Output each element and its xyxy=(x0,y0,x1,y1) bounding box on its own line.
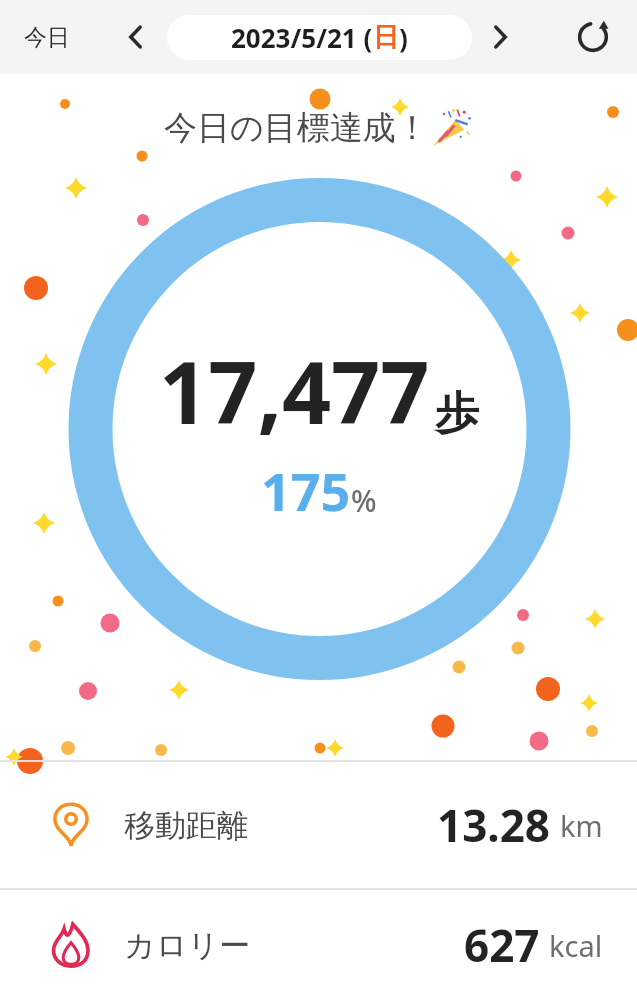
staticText: ) xyxy=(399,20,408,55)
staticText: 17,477 xyxy=(159,332,430,449)
staticText: % xyxy=(351,480,377,521)
staticText: 移動距離 xyxy=(124,806,248,845)
button[interactable]: 移動距離 xyxy=(0,762,637,888)
staticText: 日 xyxy=(373,21,399,54)
staticText: 今日の目標達成！ xyxy=(164,107,429,149)
button[interactable]: 2023/5/21 ( xyxy=(167,15,472,60)
staticText: 今日 xyxy=(24,23,70,52)
button[interactable]: 更新 xyxy=(565,9,621,65)
button[interactable]: 次の日 xyxy=(474,11,526,63)
staticText: 175 xyxy=(261,455,351,526)
staticText: カロリー xyxy=(124,926,251,965)
staticText: km xyxy=(560,806,603,845)
button[interactable]: カロリー xyxy=(0,890,637,1000)
staticText: kcal xyxy=(549,926,603,965)
staticText: 13.28 xyxy=(437,795,551,855)
staticText: 627 xyxy=(464,915,540,975)
button[interactable]: 前の日 xyxy=(110,11,162,63)
button[interactable]: 今日 xyxy=(12,15,82,60)
staticText: 2023/5/21 ( xyxy=(231,20,373,55)
staticText: 歩 xyxy=(435,386,479,441)
